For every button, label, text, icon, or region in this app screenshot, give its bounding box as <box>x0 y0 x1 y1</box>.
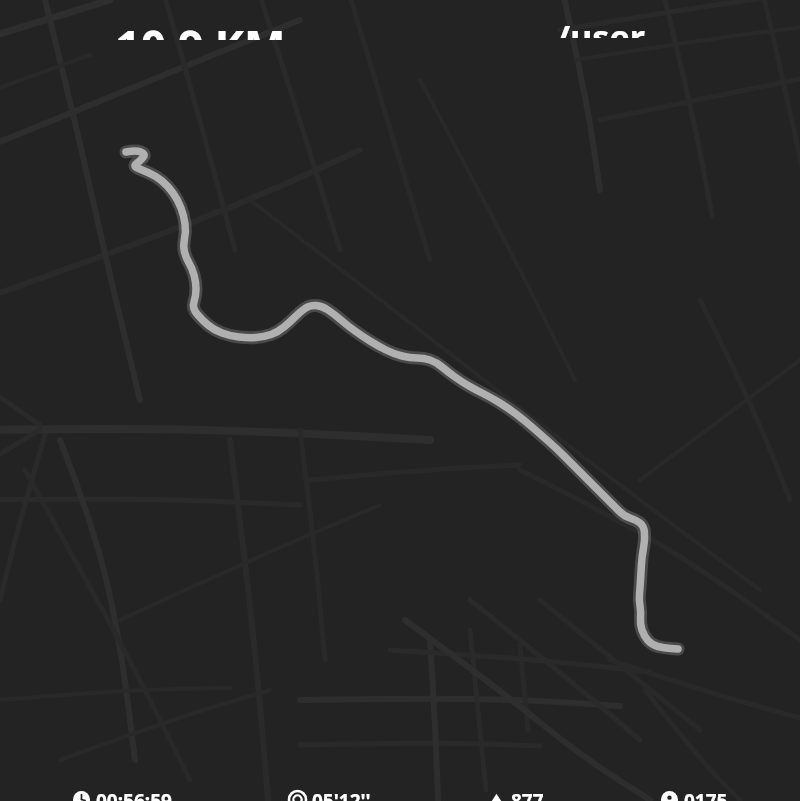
button[interactable]: Elevation gain <box>486 788 546 801</box>
button[interactable]: Calories <box>659 788 730 801</box>
staticText: /user <box>556 14 645 38</box>
button[interactable]: Average pace <box>287 788 373 801</box>
staticText: 00:56:59 <box>96 788 172 801</box>
button[interactable]: Duration <box>71 788 174 801</box>
staticText: 05'12'' <box>312 788 371 801</box>
staticText: 877 <box>511 788 544 801</box>
staticText: 10.9 KM <box>115 16 286 40</box>
button[interactable]: 10.9 KM <box>0 0 400 24</box>
staticText: 0175 <box>684 788 728 801</box>
